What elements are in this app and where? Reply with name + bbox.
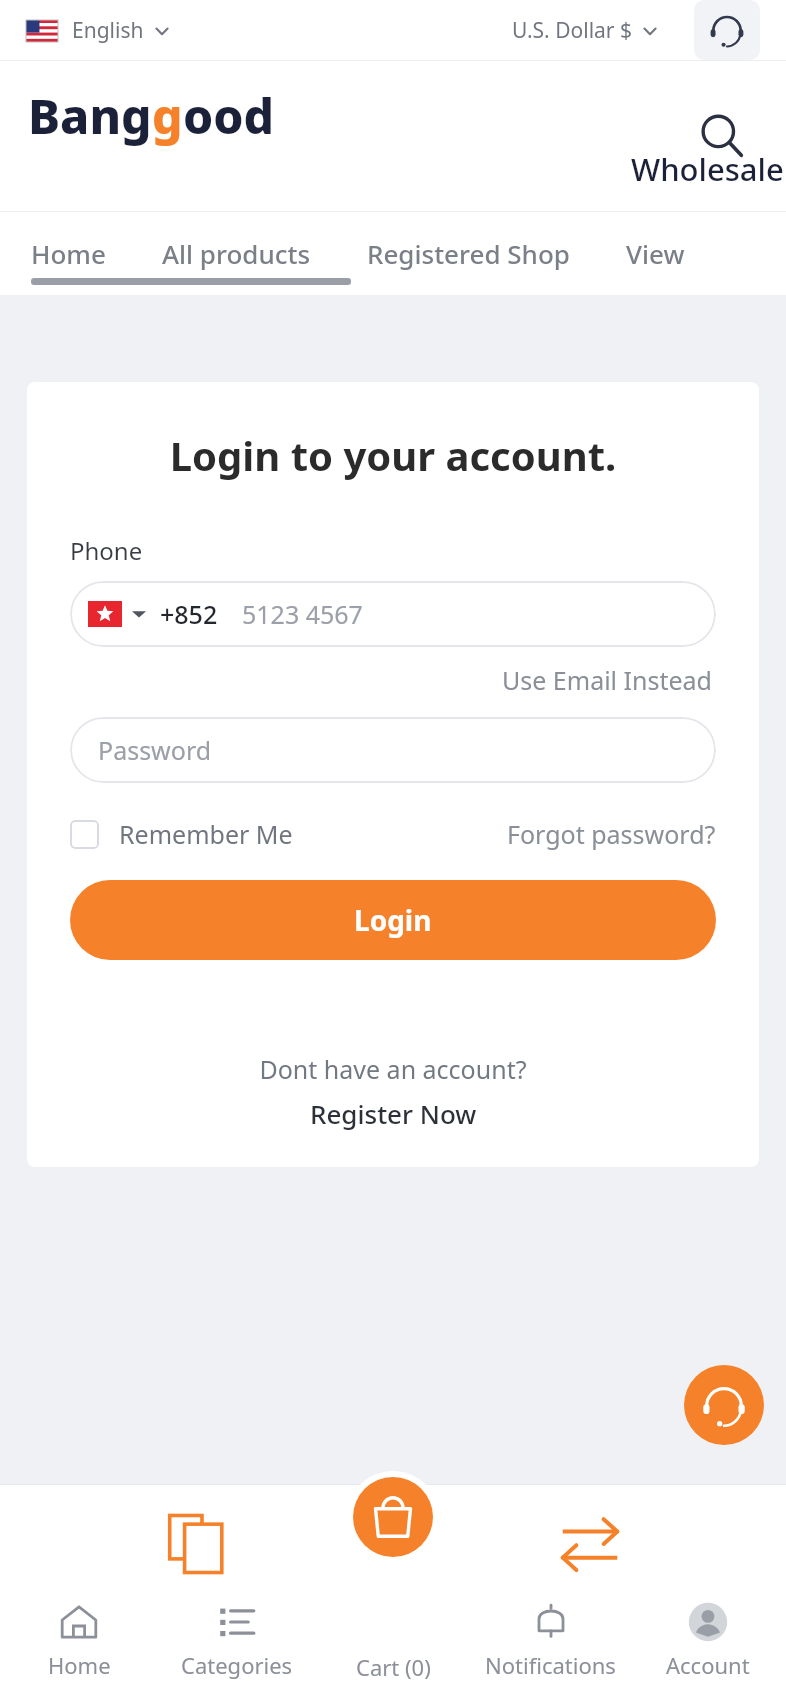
staticText: Bang: [28, 83, 152, 148]
staticText: Home: [48, 1650, 111, 1680]
staticText: Remember Me: [119, 817, 293, 851]
button[interactable]: Return policy: [393, 1513, 786, 1623]
staticText: conditions: [123, 1623, 270, 1661]
button[interactable]: Notifications: [472, 1582, 629, 1700]
button[interactable]: U.S. Dollar $: [512, 16, 658, 45]
button[interactable]: Registered Shop: [339, 212, 598, 295]
staticText: g: [152, 83, 183, 148]
button[interactable]: English: [26, 16, 170, 45]
staticText: Password: [98, 733, 212, 767]
button[interactable]: Password: [70, 717, 716, 783]
staticText: Register Now: [310, 1096, 477, 1131]
staticText: Home: [31, 236, 106, 271]
button[interactable]: Home: [0, 1582, 158, 1700]
button[interactable]: Cart (0): [315, 1582, 472, 1700]
button[interactable]: All products: [134, 212, 339, 295]
button[interactable]: +852: [70, 581, 716, 647]
staticText: English: [72, 16, 144, 45]
staticText: Wholesale: [631, 148, 784, 190]
staticText: Return policy: [497, 1585, 683, 1623]
button[interactable]: Forgot password?: [507, 817, 716, 851]
button[interactable]: Home: [0, 212, 134, 295]
staticText: Forgot password?: [507, 817, 716, 851]
staticText: View: [626, 236, 685, 271]
staticText: U.S. Dollar $: [512, 16, 632, 45]
staticText: Login to your account.: [27, 428, 759, 482]
staticText: Categories: [181, 1650, 293, 1680]
staticText: 5123 4567: [242, 597, 363, 631]
button[interactable]: Customer support: [684, 1365, 764, 1445]
button[interactable]: Login: [70, 880, 716, 960]
staticText: Use Email Instead: [502, 663, 712, 697]
staticText: Cart (0): [356, 1652, 431, 1682]
button[interactable]: Cart: [353, 1477, 433, 1557]
staticText: Dont have an account?: [27, 1052, 759, 1086]
staticText: Terms &: [140, 1585, 254, 1623]
staticText: ood: [183, 83, 275, 148]
staticText: Login: [354, 901, 432, 939]
button[interactable]: Account: [629, 1582, 786, 1700]
staticText: Notifications: [485, 1650, 616, 1680]
staticText: Account: [666, 1650, 750, 1680]
button[interactable]: Terms &: [0, 1513, 393, 1661]
button[interactable]: Remember Me: [70, 817, 293, 851]
button[interactable]: View: [598, 212, 713, 295]
button[interactable]: Use Email Instead: [498, 659, 716, 701]
staticText: Registered Shop: [367, 236, 570, 271]
button[interactable]: Register Now: [27, 1096, 759, 1131]
staticText: Phone: [70, 534, 143, 567]
button[interactable]: Categories: [158, 1582, 315, 1700]
staticText: All products: [162, 236, 311, 271]
button[interactable]: Customer service: [694, 0, 760, 60]
staticText: +852: [160, 597, 218, 631]
button[interactable]: Search: [692, 106, 752, 166]
